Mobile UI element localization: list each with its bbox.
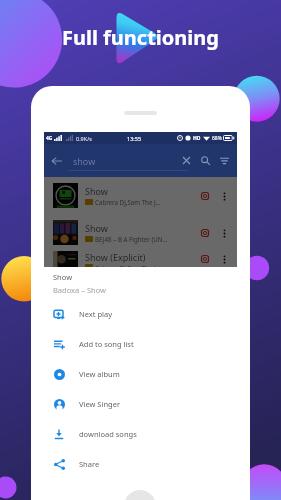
staticText: View album xyxy=(79,369,120,379)
staticText: Share xyxy=(79,459,100,469)
button[interactable]: Show (Explicit) xyxy=(44,251,237,267)
staticText: BEJ48 – B A Fighter (UN... xyxy=(95,235,168,243)
button[interactable]: Add to song list xyxy=(31,329,250,359)
button[interactable]: Filter xyxy=(217,153,232,168)
button[interactable]: Share xyxy=(31,449,250,479)
button[interactable]: Search xyxy=(198,153,213,168)
button[interactable]: Clear search xyxy=(179,153,194,168)
button[interactable]: Unavailable xyxy=(199,190,211,202)
staticText: Show xyxy=(85,222,108,234)
staticText: Badoxa – Show xyxy=(53,285,106,295)
staticText: 13:55 xyxy=(127,135,142,142)
staticText: 68% xyxy=(212,135,222,142)
staticText: Add to song list xyxy=(79,339,134,349)
staticText: Full functioning xyxy=(62,24,219,51)
button[interactable]: More options xyxy=(218,253,230,265)
button[interactable]: Unavailable xyxy=(199,253,211,265)
staticText: 0.9K/s xyxy=(76,135,92,142)
staticText: Cabrera Dj,Sam The J... xyxy=(95,198,161,206)
button[interactable]: Next play xyxy=(31,299,250,329)
staticText: Show (Explicit) xyxy=(85,251,146,263)
button[interactable]: View album xyxy=(31,359,250,389)
button[interactable]: download songs xyxy=(31,419,250,449)
staticText: show xyxy=(73,155,96,167)
staticText: Show xyxy=(85,185,108,197)
staticText: View Singer xyxy=(79,399,120,409)
button[interactable]: Unavailable xyxy=(199,227,211,239)
staticText: Show xyxy=(53,272,73,282)
button[interactable]: More options xyxy=(218,227,230,239)
button[interactable]: More options xyxy=(218,190,230,202)
staticText: Next play xyxy=(79,309,112,319)
button[interactable]: View Singer xyxy=(31,389,250,419)
button[interactable]: Show xyxy=(44,214,237,251)
button[interactable]: Show xyxy=(44,177,237,214)
button[interactable]: Back xyxy=(49,153,65,169)
staticText: Cabrera Dj,Sam The J... xyxy=(95,264,161,267)
staticText: 4G xyxy=(46,135,53,142)
staticText: HD xyxy=(193,135,201,142)
staticText: download songs xyxy=(79,429,137,439)
